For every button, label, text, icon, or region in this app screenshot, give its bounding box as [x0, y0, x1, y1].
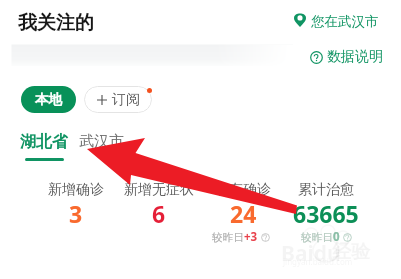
staticText: 武汉市 — [79, 132, 124, 151]
staticText: 新增无症状 — [124, 181, 194, 199]
staticText: 较昨日 — [301, 231, 333, 244]
staticText: 经验 — [332, 240, 370, 264]
button[interactable]: 湖北省 — [20, 132, 68, 161]
staticText: 数据说明 — [327, 48, 383, 66]
staticText: 较昨日 — [212, 231, 244, 244]
staticText: 本地 — [35, 91, 62, 108]
staticText: 现有确诊 — [215, 181, 271, 199]
staticText: jingyan.baidu.com — [283, 256, 353, 267]
button[interactable]: 订阅 — [84, 86, 152, 113]
button[interactable]: 数据说明 — [308, 46, 385, 68]
staticText: 6 — [152, 198, 166, 229]
staticText: Baidu — [281, 239, 341, 268]
staticText: 3 — [69, 198, 83, 229]
staticText: 湖北省 — [20, 132, 68, 152]
staticText: 63665 — [293, 198, 359, 229]
staticText: 订阅 — [112, 91, 140, 109]
staticText: 累计治愈 — [298, 181, 354, 199]
staticText: 新增确诊 — [48, 181, 104, 199]
staticText: 0 — [333, 229, 340, 245]
staticText: +3 — [244, 229, 258, 245]
staticText: 24 — [230, 198, 257, 229]
staticText: 您在武汉市 — [311, 13, 379, 30]
button[interactable]: Current location — [292, 11, 381, 32]
button[interactable]: 本地 — [21, 86, 76, 113]
button[interactable]: 武汉市 — [79, 132, 124, 151]
staticText: 我关注的 — [18, 11, 94, 35]
